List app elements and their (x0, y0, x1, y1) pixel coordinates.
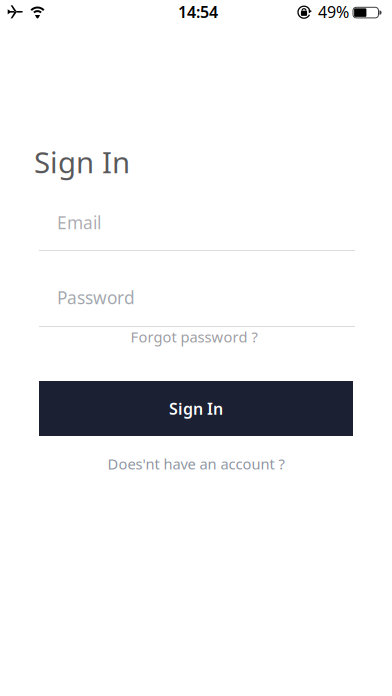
button[interactable]: Sign In (39, 381, 353, 436)
staticText: Sign In (169, 398, 223, 419)
staticText: Sign In (34, 142, 130, 181)
button[interactable]: Forgot password ? (130, 327, 257, 346)
button[interactable]: Does'nt have an account ? (107, 454, 284, 473)
staticText: Forgot password ? (130, 327, 257, 346)
staticText: Does'nt have an account ? (107, 454, 284, 473)
staticText: Email (57, 211, 101, 234)
staticText: Password (57, 286, 135, 309)
staticText: 49% (318, 1, 349, 22)
staticText: 14:54 (178, 1, 218, 22)
